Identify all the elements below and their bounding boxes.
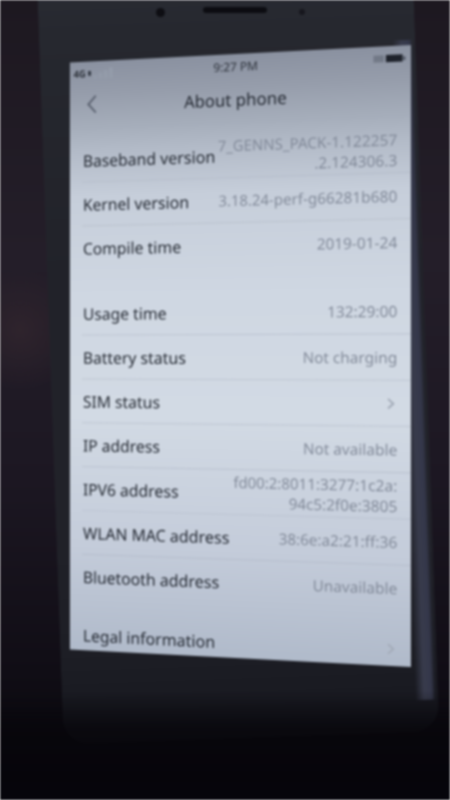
staticText: 4G [74,66,86,81]
staticText: Compile time [83,235,182,259]
staticText: 94c5:2f0e:3805 [288,493,397,516]
staticText: Not available [303,438,397,460]
staticText: IP address [83,434,161,457]
staticText: Baseband version [83,145,216,171]
staticText: Kernel version [83,190,190,215]
button[interactable]: Usage time [70,288,411,335]
button[interactable]: Back [72,83,111,126]
staticText: Unavailable [312,575,397,598]
staticText: fd00:2:8011:3277:1c2a: [233,472,397,496]
staticText: Not charging [302,347,397,367]
staticText: 132:29:00 [326,300,397,321]
button[interactable]: IP address [70,423,411,472]
button[interactable]: Kernel version [70,173,411,226]
staticText: About phone [184,86,288,113]
staticText: Bluetooth address [83,565,219,592]
button[interactable]: Legal information [70,617,411,667]
staticText: 9:27 PM [213,57,259,75]
button[interactable]: IPV6 address [70,467,411,519]
staticText: Battery status [83,346,186,368]
staticText: SIM status [83,390,161,412]
button[interactable]: WLAN MAC address [70,510,411,565]
staticText: WLAN MAC address [83,522,230,548]
staticText: IPV6 address [83,478,179,502]
staticText: Usage time [83,302,167,324]
button[interactable]: Compile time [70,219,411,269]
button[interactable]: Baseband version [70,126,411,182]
button[interactable]: SIM status [70,379,411,426]
staticText: 7_GENNS_PACK-1.122257 [217,129,397,156]
staticText: 2019-01-24 [316,232,397,254]
staticText: Legal information [83,624,215,652]
button[interactable]: Battery status [70,334,411,380]
staticText: .2.124306.3 [314,149,397,173]
staticText: 3.18.24-perf-g66281b680 [218,185,397,210]
staticText: 38:6e:a2:21:ff:36 [279,528,397,552]
button[interactable]: Bluetooth address [70,554,411,611]
